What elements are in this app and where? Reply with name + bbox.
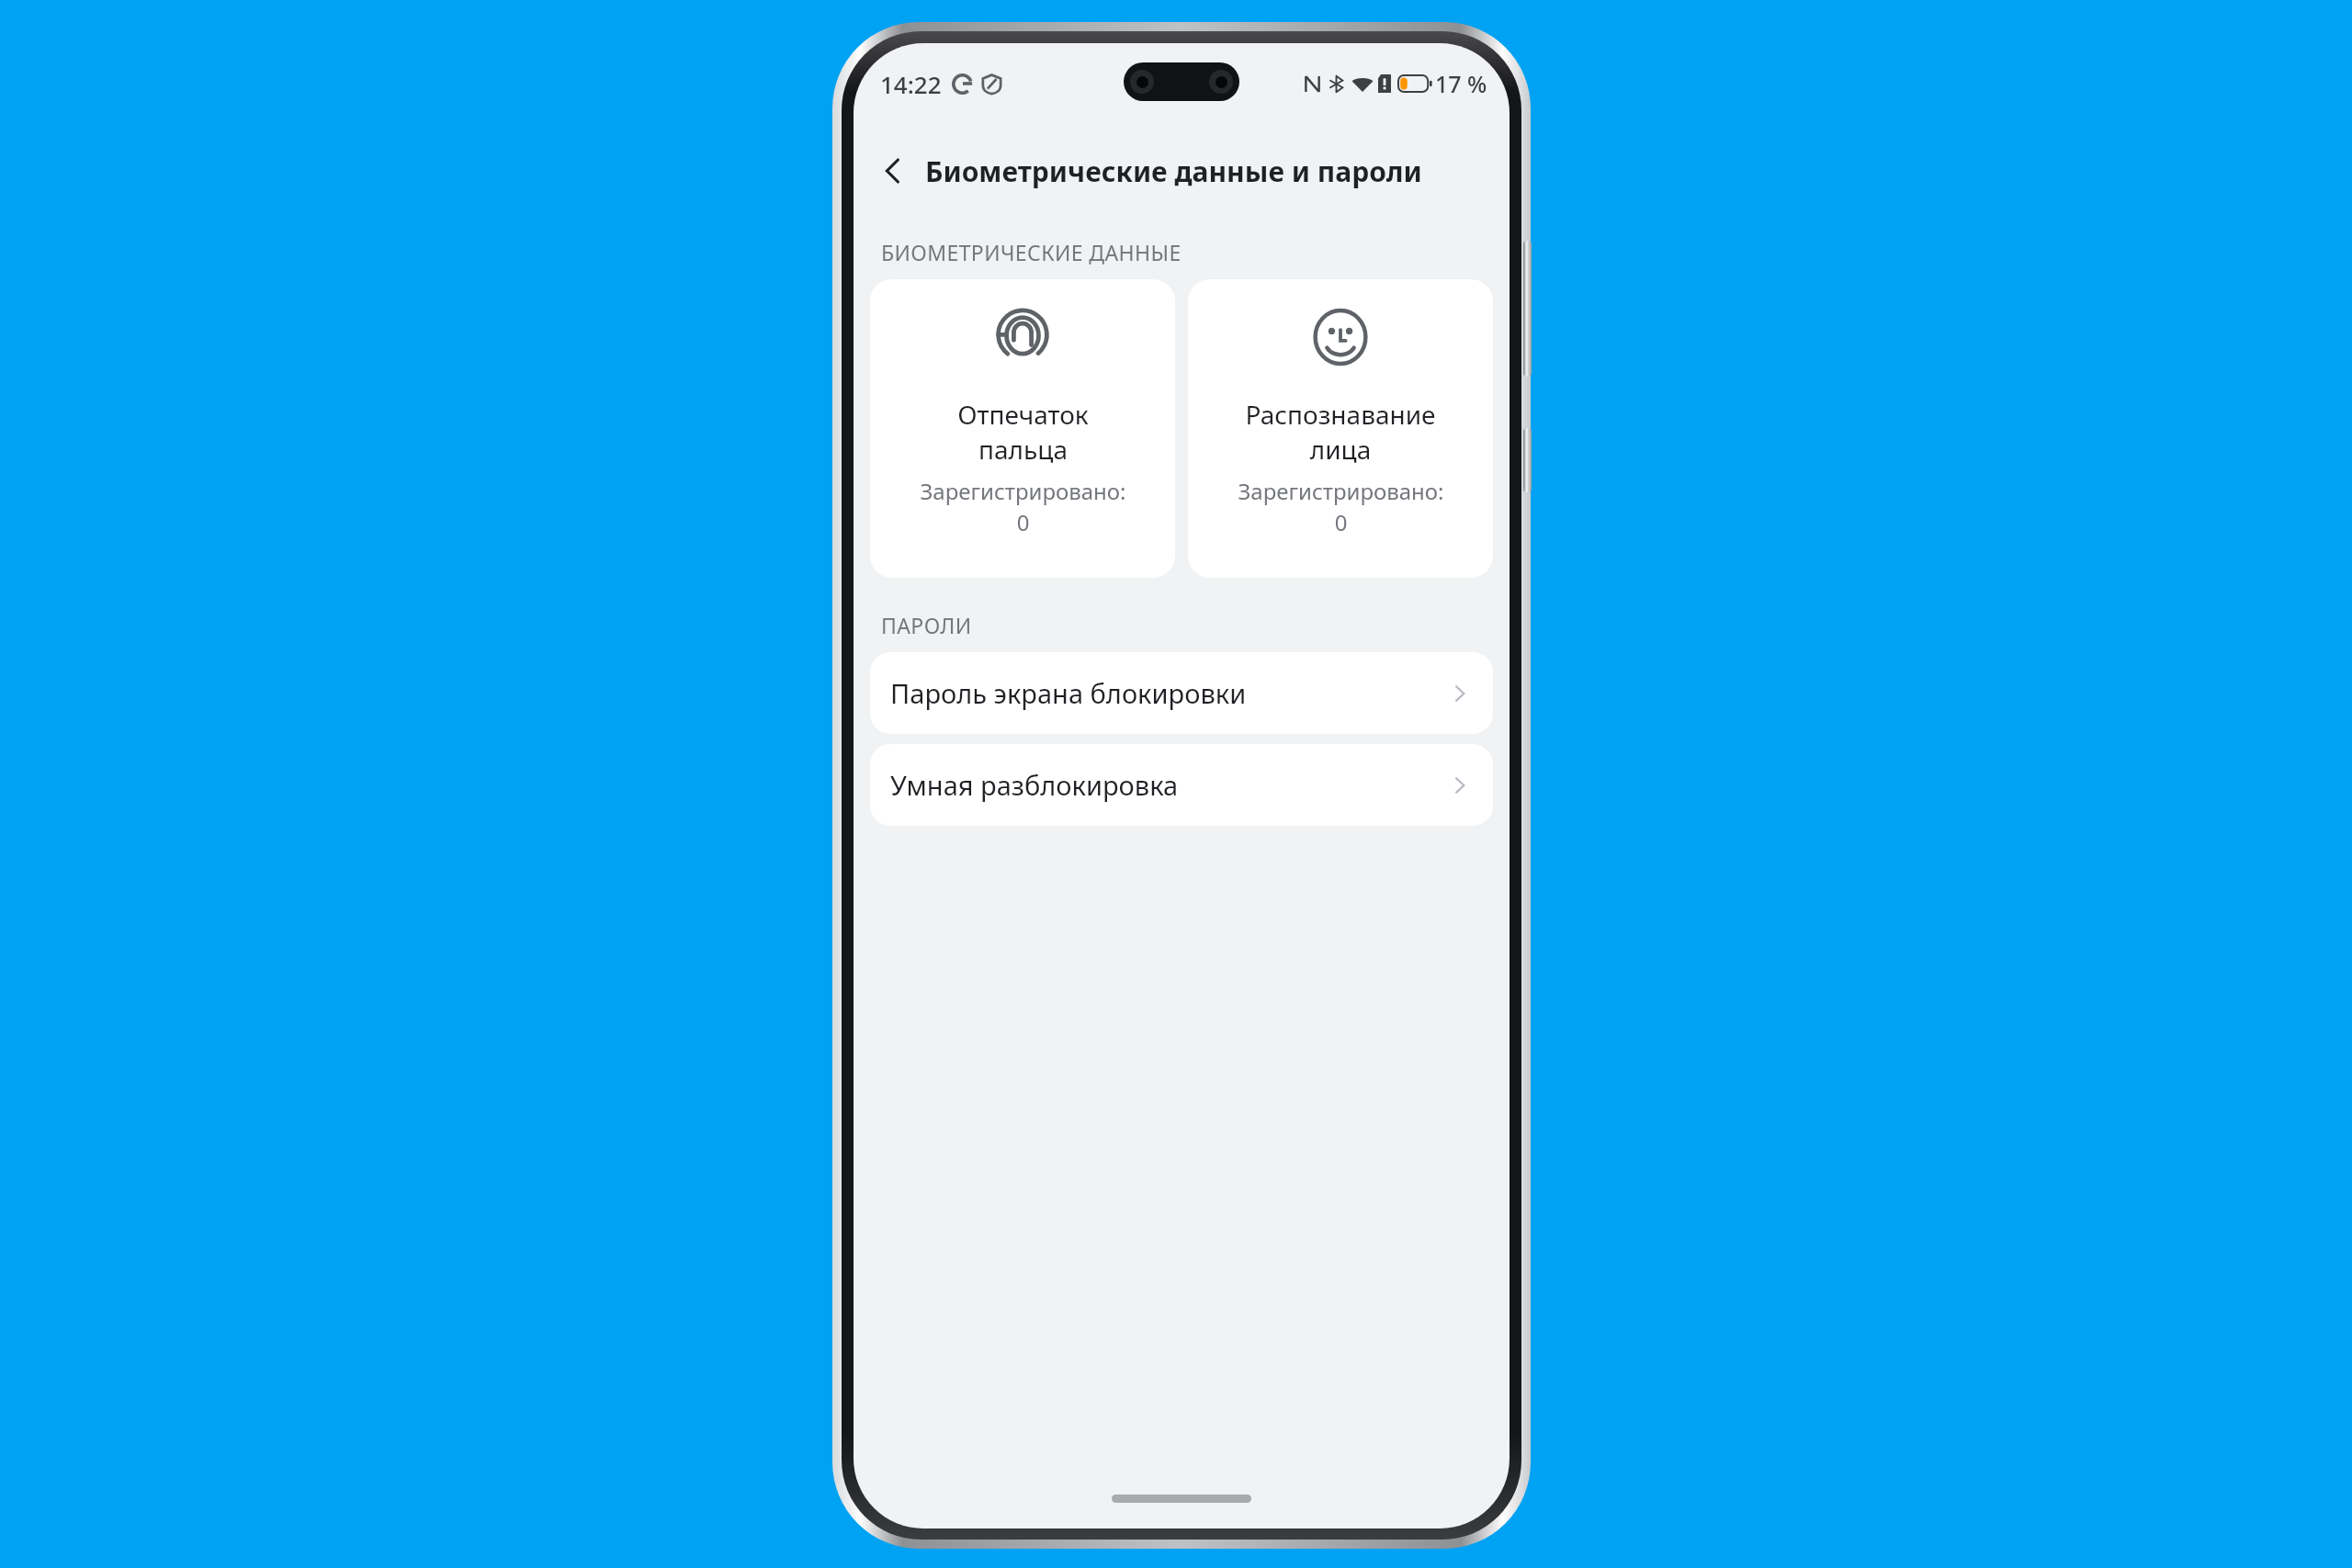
button[interactable]: Пароль экрана блокировки: [870, 652, 1493, 734]
button[interactable]: Назад: [866, 144, 920, 197]
button[interactable]: Распознавание лица: [1188, 279, 1493, 578]
staticText: Пароль экрана блокировки: [890, 675, 1247, 711]
staticText: Зарегистрировано: 0: [1238, 476, 1444, 537]
staticText: 14:22: [880, 68, 942, 100]
staticText: ПАРОЛИ: [881, 611, 972, 639]
staticText: Умная разблокировка: [890, 767, 1179, 803]
staticText: Распознавание лица: [1245, 397, 1436, 467]
button[interactable]: Отпечаток пальца: [870, 279, 1175, 578]
button[interactable]: Умная разблокировка: [870, 744, 1493, 826]
staticText: БИОМЕТРИЧЕСКИЕ ДАННЫЕ: [881, 238, 1182, 266]
staticText: Биометрические данные и пароли: [925, 152, 1422, 190]
staticText: Отпечаток пальца: [957, 397, 1089, 467]
staticText: 17 %: [1435, 68, 1487, 99]
staticText: Зарегистрировано: 0: [920, 476, 1126, 537]
